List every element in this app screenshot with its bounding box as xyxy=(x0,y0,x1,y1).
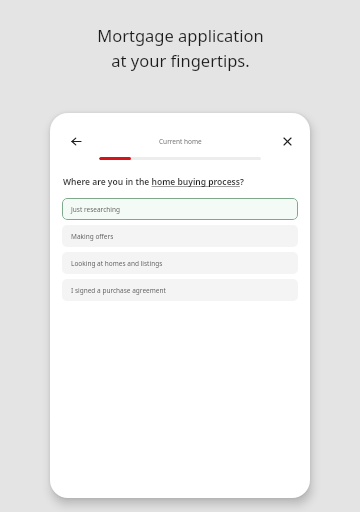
staticText: Making offers xyxy=(71,232,114,241)
staticText: at your fingertips. xyxy=(111,49,250,71)
staticText: Where are you in the home buying process… xyxy=(63,176,244,188)
staticText: Current home xyxy=(159,137,202,146)
button[interactable]: Close xyxy=(276,131,298,151)
button[interactable]: Looking at homes and listings xyxy=(62,252,298,274)
button[interactable]: Making offers xyxy=(62,225,298,247)
button[interactable]: Just researching xyxy=(62,198,298,220)
staticText: Mortgage application xyxy=(97,24,264,46)
staticText: I signed a purchase agreement xyxy=(71,286,166,295)
staticText: Looking at homes and listings xyxy=(71,259,163,268)
button[interactable]: Back xyxy=(64,131,88,151)
staticText: Just researching xyxy=(71,205,120,214)
button[interactable]: I signed a purchase agreement xyxy=(62,279,298,301)
